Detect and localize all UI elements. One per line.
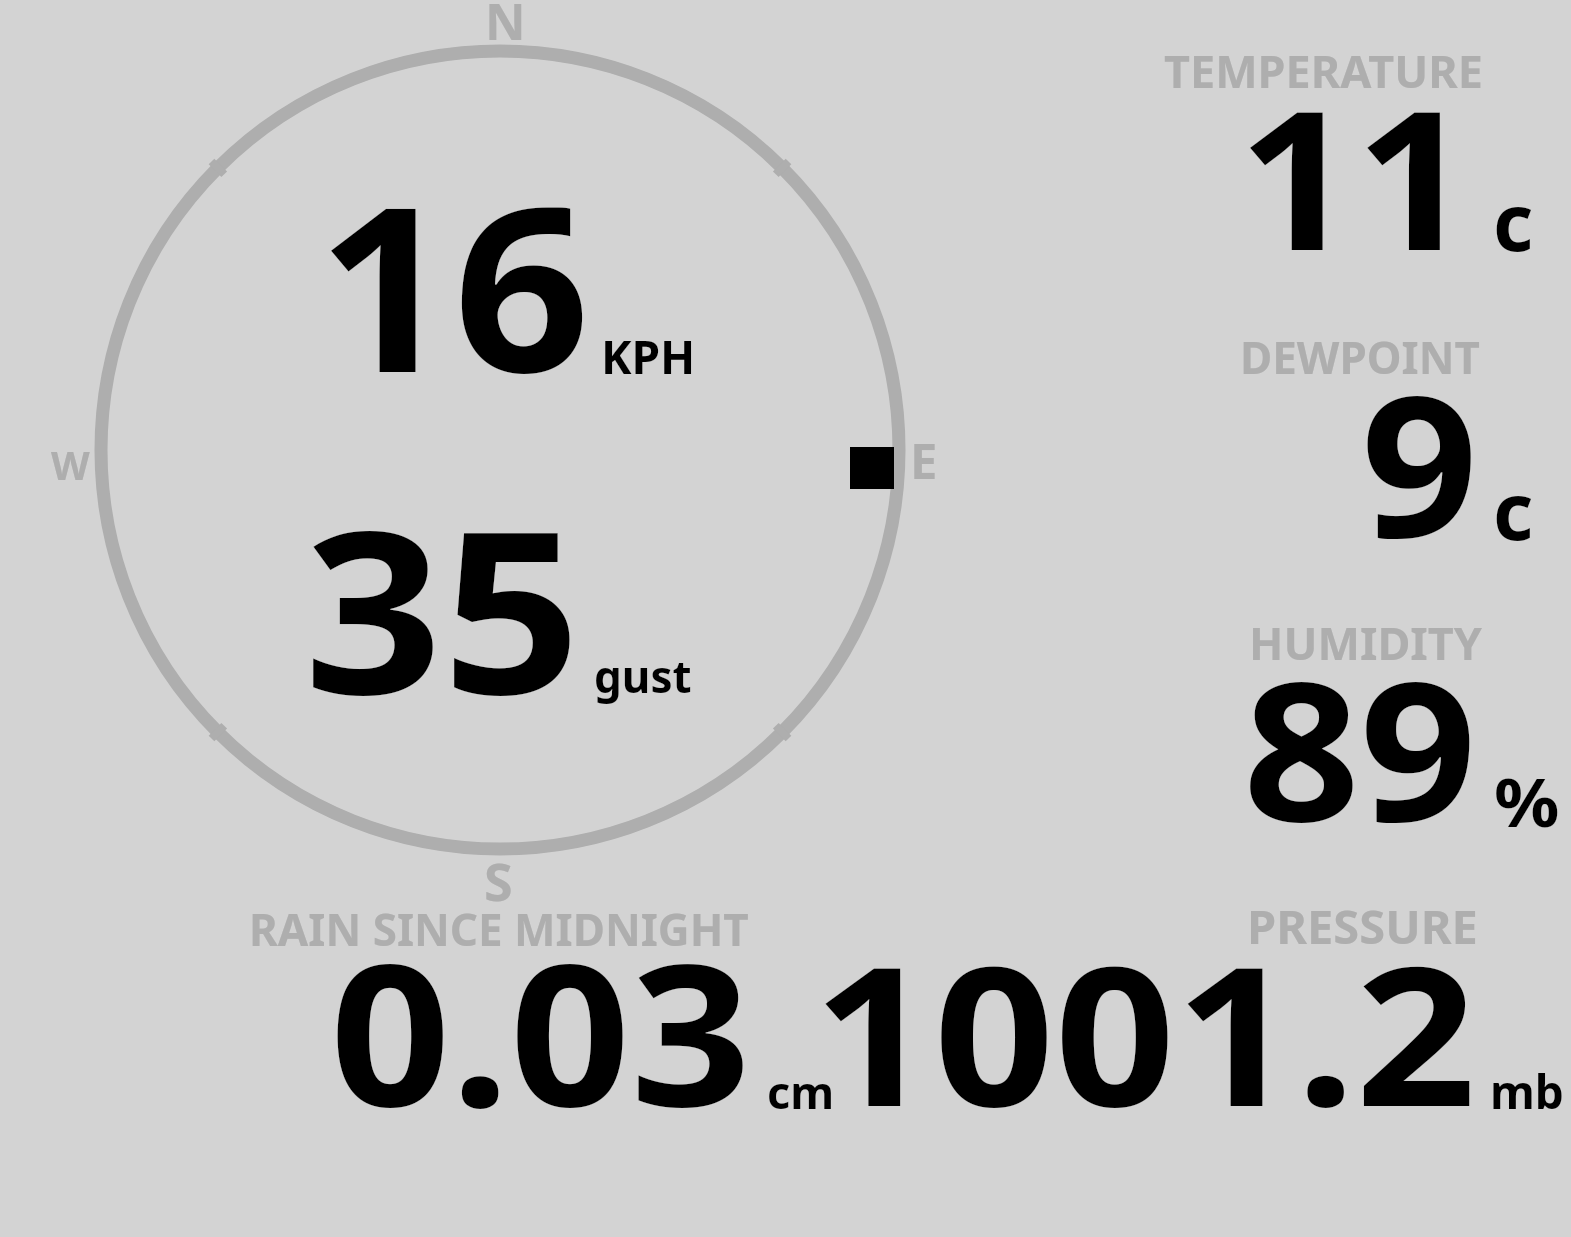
staticText: 89 — [1243, 616, 1477, 878]
staticText: TEMPERATURE — [1164, 40, 1483, 101]
staticText: 35 — [304, 453, 581, 759]
staticText: S — [484, 845, 513, 916]
staticText: W — [51, 437, 90, 491]
staticText: 9 — [1361, 329, 1479, 595]
button[interactable]: PRESSURE 1001.2 mb — [785, 880, 1571, 1140]
staticText: 16 — [317, 127, 590, 439]
button[interactable]: Wind 16 KPH gusting 35, from the west — [0, 0, 1000, 910]
staticText: KPH — [601, 325, 696, 388]
staticText: 1001.2 — [813, 900, 1477, 1160]
staticText: PRESSURE — [1247, 894, 1478, 958]
staticText: mb — [1490, 1060, 1564, 1123]
staticText: E — [910, 427, 938, 494]
staticText: c — [1493, 457, 1534, 563]
button[interactable]: HUMIDITY 89 % — [1000, 570, 1571, 855]
staticText: N — [485, 0, 526, 55]
staticText: 11 — [1238, 45, 1473, 307]
button[interactable]: DEWPOINT 9 c — [1000, 285, 1571, 570]
staticText: HUMIDITY — [1249, 612, 1482, 673]
staticText: % — [1494, 756, 1560, 846]
staticText: c — [1493, 168, 1534, 274]
staticText: gust — [594, 646, 692, 706]
staticText: cm — [767, 1061, 835, 1122]
staticText: RAIN SINCE MIDNIGHT — [249, 899, 749, 959]
staticText: 0.03 — [330, 898, 752, 1158]
staticText: DEWPOINT — [1240, 327, 1480, 387]
button[interactable]: TEMPERATURE 11 c — [1000, 0, 1571, 285]
button[interactable]: RAIN SINCE MIDNIGHT 0.03 cm — [200, 880, 785, 1140]
